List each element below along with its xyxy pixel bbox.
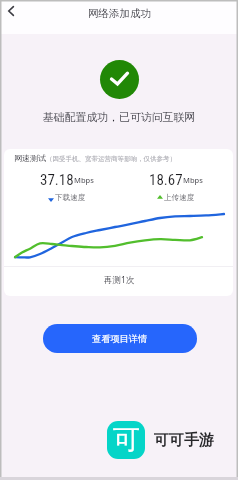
staticText: 网速测试 [14, 153, 46, 163]
staticText: （因受手机、宽带运营商等影响，仅供参考） [46, 155, 176, 163]
staticText: 上传速度 [164, 193, 195, 203]
staticText: 可可手游 [154, 431, 214, 450]
staticText: 18.67 [149, 171, 183, 189]
button[interactable]: 再测1次 [4, 265, 233, 295]
staticText: 可 [113, 423, 140, 457]
button[interactable]: 可 [107, 420, 214, 460]
staticText: 37.18 [40, 171, 74, 189]
staticText: 网络添加成功 [88, 7, 151, 20]
staticText: Mbps [74, 175, 94, 185]
staticText: 查看项目详情 [92, 333, 148, 345]
button[interactable]: Back [0, 0, 22, 22]
staticText: Mbps [183, 175, 203, 185]
staticText: 基础配置成功，已可访问互联网 [0, 111, 238, 125]
staticText: 再测1次 [104, 274, 135, 286]
button[interactable]: 查看项目详情 [43, 324, 197, 353]
staticText: 下载速度 [55, 193, 86, 203]
